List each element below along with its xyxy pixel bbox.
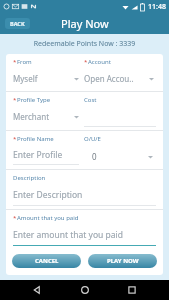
staticText: * [84,58,88,66]
button[interactable]: Merchant [13,111,84,122]
staticText: BACK [10,20,25,27]
staticText: Cost [84,96,97,104]
staticText: Profile Type [17,96,51,104]
staticText: O/U/E [84,135,101,143]
other: Open dropdown [74,115,79,119]
staticText: Open Accou.. [84,73,149,84]
button[interactable]: 0 [84,151,156,165]
other: Open dropdown [148,155,153,159]
staticText: Redeemable Points Now : 3339 [0,39,169,49]
staticText: From [17,58,32,66]
staticText: * [13,135,17,143]
staticText: 11:48 [148,2,166,12]
staticText: PLAY NOW [107,257,139,265]
staticText: * [13,214,17,222]
staticText: Description [13,174,46,182]
button[interactable]: BACK [5,18,30,29]
button[interactable]: PLAY NOW [88,254,157,268]
staticText: Enter Profile name [13,149,84,161]
button[interactable]: Myself [13,73,84,84]
button[interactable]: Home [74,280,96,300]
button[interactable]: Recent apps [121,280,143,300]
staticText: Amount that you paid [17,214,79,222]
button[interactable]: Enter amount that you paid [13,229,156,241]
staticText: Profile Name [17,135,54,143]
button[interactable]: Enter Description [13,189,156,201]
staticText: Play Now [61,16,109,31]
button[interactable]: Open Accou.. [84,73,156,84]
staticText: * [13,58,17,66]
staticText: Account [88,58,111,66]
staticText: Myself [13,73,74,84]
button[interactable]: CANCEL [12,254,81,268]
staticText: * [13,96,17,104]
other: Open dropdown [74,77,79,81]
staticText: Merchant [13,111,74,122]
staticText: CANCEL [35,257,59,265]
staticText: 0 [92,151,97,162]
button[interactable]: Enter Profile name [13,149,84,165]
other: Open dropdown [149,77,154,81]
button[interactable]: Back [26,280,48,300]
